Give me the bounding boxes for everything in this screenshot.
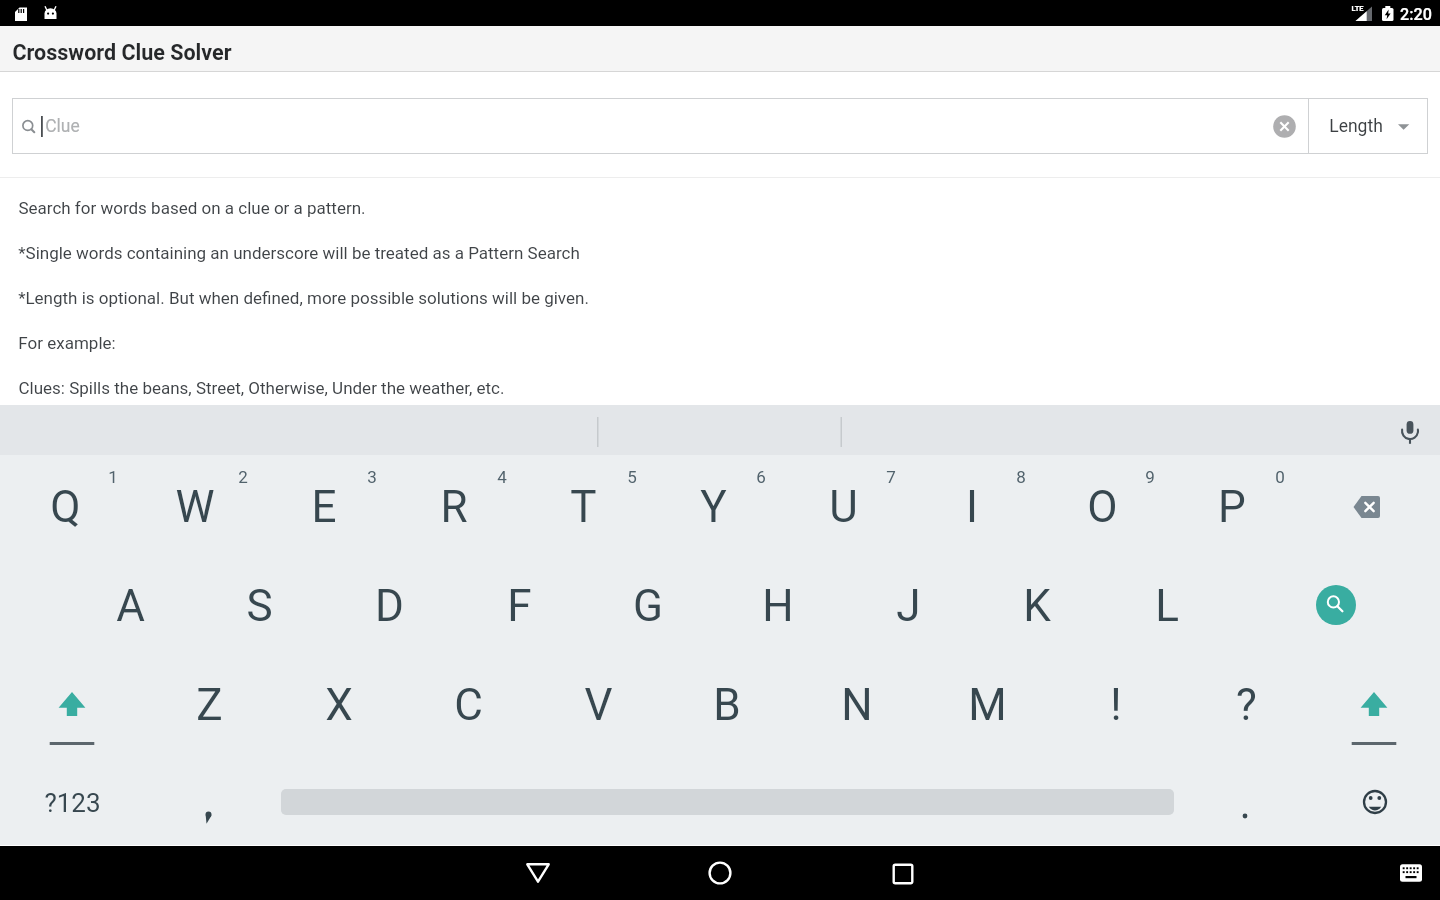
staticText: Clues: Spills the beans, Street, Otherwi… <box>18 378 505 398</box>
button[interactable] <box>1396 405 1424 455</box>
staticText: A <box>116 580 145 632</box>
staticText: Search for words based on a clue or a pa… <box>18 198 366 218</box>
button[interactable] <box>1389 855 1433 891</box>
staticText: For example: <box>18 333 116 353</box>
button[interactable]: M <box>927 661 1047 749</box>
button[interactable]: ? <box>1186 661 1306 749</box>
button[interactable]: T <box>523 463 643 551</box>
button[interactable]: D <box>329 562 449 650</box>
button[interactable]: P <box>1172 463 1292 551</box>
staticText: 6 <box>756 467 766 487</box>
button[interactable]: O <box>1042 463 1162 551</box>
button[interactable]: W <box>135 463 255 551</box>
button[interactable]: S <box>199 562 319 650</box>
staticText: 4 <box>497 467 507 487</box>
staticText: P <box>1218 481 1246 533</box>
button[interactable]: I <box>912 463 1032 551</box>
button[interactable]: U <box>783 463 903 551</box>
staticText: Y <box>700 481 727 533</box>
button[interactable]: V <box>538 661 658 749</box>
button[interactable] <box>1215 778 1275 828</box>
button[interactable] <box>17 692 127 762</box>
staticText: F <box>507 580 532 632</box>
button[interactable] <box>1345 777 1405 827</box>
staticText: U <box>829 481 858 533</box>
staticText: 5 <box>627 467 637 487</box>
staticText: S <box>246 580 273 632</box>
button[interactable] <box>675 846 765 900</box>
button[interactable] <box>180 778 240 828</box>
staticText: V <box>584 679 613 731</box>
button[interactable]: G <box>588 562 708 650</box>
staticText: ?123 <box>44 788 101 818</box>
button[interactable]: Y <box>653 463 773 551</box>
button[interactable] <box>1323 467 1413 547</box>
button[interactable]: A <box>70 562 190 650</box>
button[interactable]: ?123 <box>22 778 122 828</box>
button[interactable] <box>1291 565 1381 645</box>
staticText: 3 <box>367 467 377 487</box>
staticText: M <box>968 679 1007 731</box>
staticText: Clue <box>45 116 80 137</box>
button[interactable]: E <box>264 463 384 551</box>
button[interactable]: H <box>718 562 838 650</box>
staticText: ! <box>1110 679 1122 731</box>
staticText: 9 <box>1145 467 1155 487</box>
button[interactable]: X <box>279 661 399 749</box>
staticText: H <box>762 580 794 632</box>
button[interactable]: Z <box>149 661 269 749</box>
staticText: 8 <box>1016 467 1026 487</box>
staticText: L <box>1155 580 1179 632</box>
button[interactable]: N <box>797 661 917 749</box>
staticText: Z <box>196 679 223 731</box>
staticText: Q <box>50 481 81 533</box>
staticText: 2:20 <box>1400 5 1432 24</box>
button[interactable] <box>1319 692 1429 762</box>
staticText: 2 <box>238 467 248 487</box>
staticText: *Length is optional. But when defined, m… <box>18 288 589 308</box>
staticText: T <box>570 481 597 533</box>
button[interactable]: F <box>459 562 579 650</box>
staticText: 7 <box>886 467 896 487</box>
button[interactable] <box>493 846 583 900</box>
button[interactable] <box>858 847 948 900</box>
staticText: *Single words containing an underscore w… <box>18 243 580 263</box>
button[interactable]: C <box>408 661 528 749</box>
button[interactable]: K <box>977 562 1097 650</box>
button[interactable]: J <box>848 562 968 650</box>
button[interactable]: B <box>667 661 787 749</box>
staticText: Crossword Clue Solver <box>12 40 232 65</box>
button[interactable]: ! <box>1056 661 1176 749</box>
button[interactable]: L <box>1107 562 1227 650</box>
staticText: W <box>175 481 215 533</box>
staticText: D <box>375 580 404 632</box>
staticText: 0 <box>1275 467 1285 487</box>
staticText: LTE <box>1351 4 1364 13</box>
staticText: 1 <box>108 467 118 487</box>
staticText: I <box>966 481 978 533</box>
staticText: J <box>896 580 921 632</box>
staticText: ? <box>1236 679 1257 731</box>
staticText: C <box>454 679 483 731</box>
button[interactable]: Clue <box>12 98 1309 154</box>
staticText: X <box>325 679 353 731</box>
staticText: B <box>713 679 741 731</box>
staticText: O <box>1087 481 1118 533</box>
staticText: K <box>1023 580 1051 632</box>
staticText: R <box>440 481 468 533</box>
button[interactable]: Length <box>1308 98 1428 154</box>
staticText: Length <box>1329 116 1383 137</box>
button[interactable] <box>1273 115 1296 138</box>
staticText: N <box>841 679 873 731</box>
staticText: E <box>311 481 337 533</box>
button[interactable]: R <box>394 463 514 551</box>
staticText: G <box>633 580 663 632</box>
button[interactable]: Q <box>5 463 125 551</box>
